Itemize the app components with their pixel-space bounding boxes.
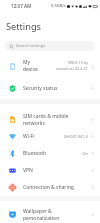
button[interactable]: Wi-Fi [0,128,100,145]
button[interactable]: Security status [0,80,100,97]
button[interactable]: Search settings [5,41,95,51]
button[interactable]: SIM cards & mobile networks [0,111,100,128]
button[interactable]: Bluetooth [0,145,100,162]
staticText: Wallpaper & personalization [23,208,91,221]
staticText: SIM cards & mobile networks [23,113,91,126]
staticText: Connection & sharing [23,184,91,191]
staticText: Settings [6,20,41,32]
button[interactable]: My device [0,54,100,80]
staticText: On [82,151,88,156]
staticText: MIUI 13 by xiaomi.eu 22.4.21 [55,60,88,71]
staticText: 12:07 AM [11,3,32,9]
staticText: GHOST-941-5 [63,134,88,139]
staticText: Security status [23,85,91,92]
staticText: 0.5KB/s [51,3,66,9]
staticText: Bluetooth [23,150,82,157]
staticText: Search settings [16,43,46,49]
button[interactable]: VPN [0,162,100,179]
staticText: Wi-Fi [23,133,63,140]
button[interactable]: Connection & sharing [0,179,100,196]
button[interactable]: Wallpaper & personalization [0,205,100,223]
staticText: My device [23,59,55,72]
staticText: VPN [23,167,91,174]
